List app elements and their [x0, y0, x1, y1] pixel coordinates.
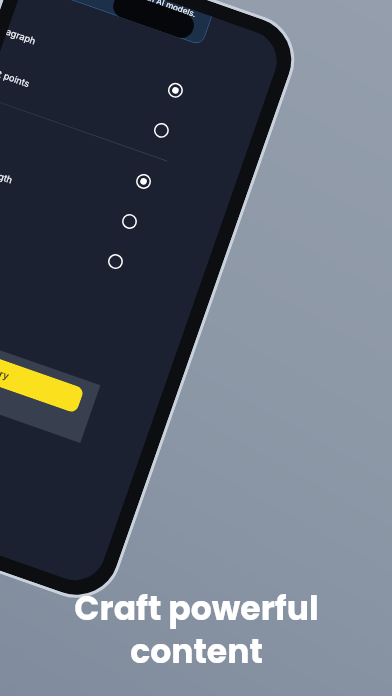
staticText: Bullet points — [0, 66, 150, 131]
button[interactable]: Summarize your transcript and share it w… — [24, 0, 212, 46]
staticText: Generate summary — [0, 341, 11, 382]
button[interactable]: Bullet points — [0, 51, 194, 159]
button[interactable]: Paragraph — [0, 11, 208, 119]
staticText: Craft powerful content — [74, 585, 319, 674]
button[interactable]: Detailed — [0, 183, 148, 290]
staticText: Standard length — [0, 157, 118, 222]
button[interactable]: Generate summary — [0, 325, 85, 414]
button[interactable]: Short — [0, 102, 176, 210]
button[interactable]: Standard length — [0, 142, 162, 250]
staticText: Short — [0, 117, 132, 182]
staticText: Summarize your transcript and share it w… — [27, 0, 203, 34]
staticText: Paragraph — [5, 26, 164, 91]
